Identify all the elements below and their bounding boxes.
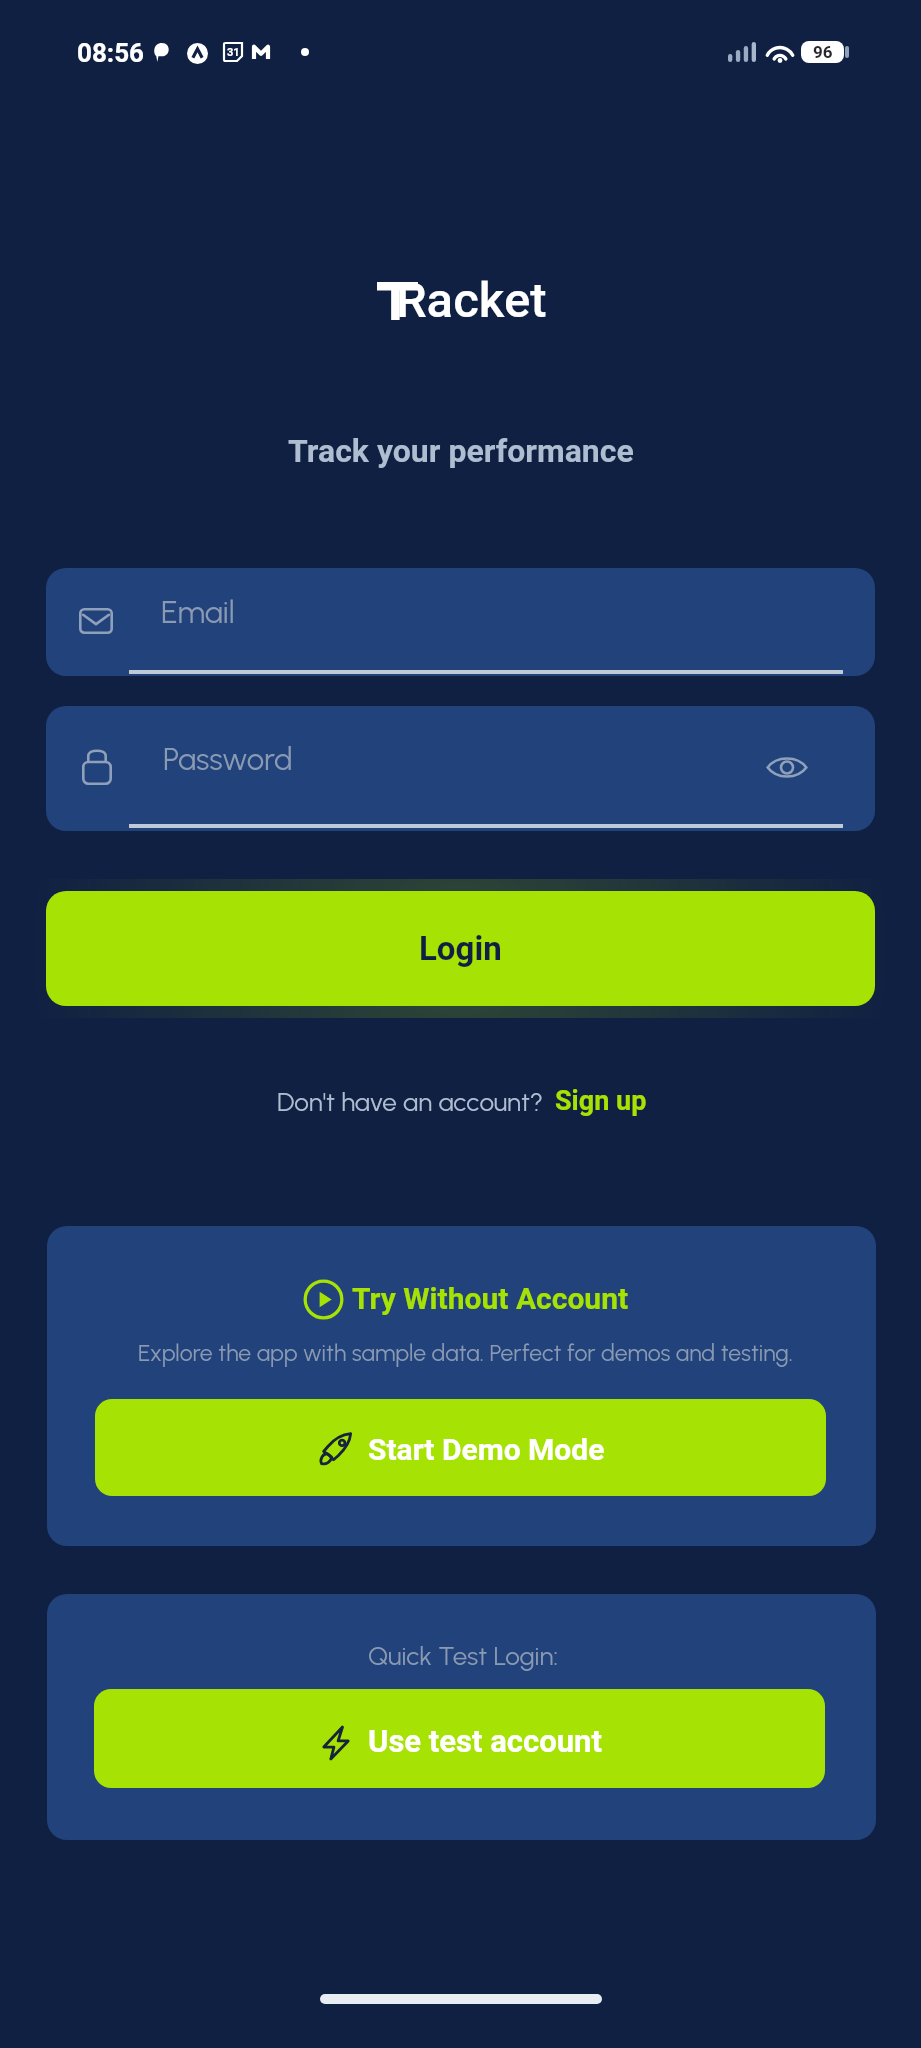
staticText: Track your performance xyxy=(288,432,634,470)
button[interactable]: Show password xyxy=(758,738,816,796)
button[interactable]: Email xyxy=(46,568,875,676)
staticText: Quick Test Login: xyxy=(368,1640,559,1671)
staticText: Password xyxy=(163,741,293,778)
staticText: 96 xyxy=(813,42,833,62)
button[interactable]: Sign up xyxy=(555,1085,647,1117)
staticText: Racket xyxy=(396,272,547,329)
button[interactable]: Login xyxy=(46,891,875,1006)
staticText: Use test account xyxy=(368,1723,602,1759)
staticText: Explore the app with sample data. Perfec… xyxy=(138,1339,793,1367)
staticText: 08:56 xyxy=(77,38,145,68)
staticText: Try Without Account xyxy=(352,1281,629,1316)
button[interactable]: Use test account xyxy=(94,1689,825,1788)
staticText: Email xyxy=(161,594,235,631)
staticText: Don't have an account? xyxy=(277,1086,544,1117)
staticText: Sign up xyxy=(555,1085,647,1117)
staticText: Login xyxy=(419,929,502,968)
button[interactable]: Start Demo Mode xyxy=(95,1399,826,1496)
button[interactable]: Password xyxy=(46,706,875,831)
staticText: 31 xyxy=(227,46,240,59)
staticText: Start Demo Mode xyxy=(368,1432,605,1467)
